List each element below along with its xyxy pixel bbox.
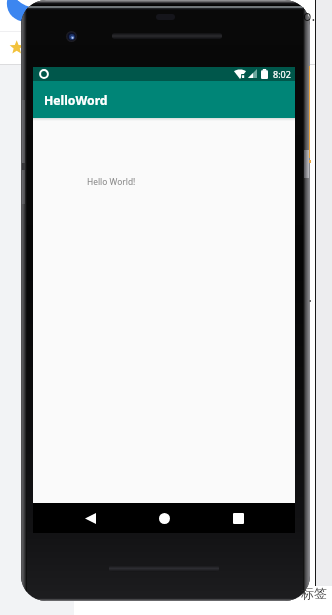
staticText: Hello World! bbox=[87, 176, 136, 187]
button[interactable]: Recents bbox=[225, 505, 251, 531]
staticText: 8:02 bbox=[273, 68, 291, 80]
button[interactable]: Home bbox=[151, 505, 177, 531]
button[interactable]: Back bbox=[77, 505, 103, 531]
staticText: 标签 bbox=[301, 585, 327, 601]
staticText: o. bbox=[303, 6, 316, 25]
staticText: HelloWord bbox=[44, 92, 108, 109]
